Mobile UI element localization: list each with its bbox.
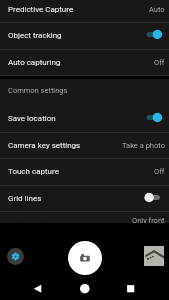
staticText: Auto capturing bbox=[8, 58, 61, 67]
button[interactable]: Predictive Capture bbox=[0, 0, 169, 23]
staticText: Auto review bbox=[8, 216, 50, 225]
staticText: Only front bbox=[132, 216, 165, 225]
staticText: Grid lines bbox=[8, 194, 42, 203]
button[interactable]: Save location bbox=[0, 106, 169, 133]
staticText: Off bbox=[154, 58, 165, 67]
button[interactable]: Auto review bbox=[0, 212, 169, 238]
button[interactable]: Gallery bbox=[144, 246, 164, 266]
staticText: Camera key settings bbox=[8, 141, 81, 150]
staticText: Off bbox=[154, 167, 165, 176]
staticText: Touch capture bbox=[8, 167, 59, 176]
staticText: Auto bbox=[149, 5, 165, 14]
button[interactable]: Auto capturing bbox=[0, 50, 169, 76]
staticText: Predictive Capture bbox=[8, 5, 74, 14]
button[interactable]: Settings bbox=[7, 248, 24, 265]
staticText: Common settings bbox=[8, 86, 68, 95]
button[interactable]: Home bbox=[75, 279, 94, 298]
button[interactable]: Touch capture bbox=[0, 159, 169, 186]
staticText: Save location bbox=[8, 114, 56, 123]
button[interactable]: Object tracking bbox=[0, 23, 169, 50]
button[interactable]: Back bbox=[28, 279, 47, 298]
button[interactable]: Recents bbox=[121, 279, 140, 298]
staticText: Take a photo bbox=[122, 141, 165, 150]
button[interactable]: Grid lines bbox=[0, 186, 169, 212]
button[interactable]: Take photo bbox=[68, 241, 102, 275]
button[interactable]: Camera key settings bbox=[0, 133, 169, 159]
staticText: Object tracking bbox=[8, 31, 62, 40]
